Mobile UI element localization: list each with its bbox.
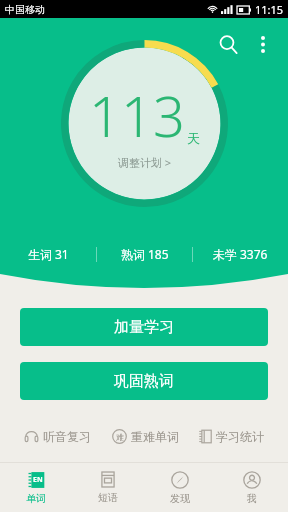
staticText: 我: [247, 492, 257, 505]
button[interactable]: 难: [108, 425, 183, 448]
staticText: 加量学习: [114, 318, 174, 337]
staticText: 中国移动: [5, 3, 45, 16]
button[interactable]: 113: [61, 40, 228, 207]
staticText: 重难单词: [131, 429, 179, 444]
button[interactable]: More options: [246, 27, 280, 61]
staticText: 天: [187, 130, 200, 146]
staticText: 113: [89, 77, 185, 153]
staticText: 未学: [213, 247, 237, 262]
button[interactable]: 熟词: [97, 246, 192, 262]
staticText: 学习统计: [216, 429, 264, 444]
button[interactable]: Search: [210, 26, 246, 62]
button[interactable]: EN: [0, 463, 72, 512]
staticText: 发现: [170, 492, 190, 505]
staticText: 难: [116, 432, 124, 442]
staticText: EN: [33, 475, 43, 485]
staticText: 3376: [240, 246, 268, 262]
button[interactable]: 加量学习: [20, 308, 268, 346]
button[interactable]: 巩固熟词: [20, 362, 268, 400]
button[interactable]: 短语: [72, 463, 144, 512]
staticText: 熟词: [121, 247, 145, 262]
button[interactable]: 调整计划 >: [118, 155, 172, 170]
staticText: 185: [148, 246, 169, 262]
staticText: 生词: [28, 247, 52, 262]
staticText: 调整计划 >: [118, 155, 172, 170]
staticText: 单词: [26, 492, 46, 505]
staticText: 听音复习: [43, 429, 91, 444]
button[interactable]: 发现: [144, 463, 216, 512]
staticText: 11:15: [255, 2, 284, 17]
button[interactable]: 听音复习: [20, 425, 95, 448]
staticText: 巩固熟词: [114, 372, 174, 391]
staticText: 短语: [98, 491, 118, 504]
staticText: 31: [55, 246, 69, 262]
button[interactable]: 未学: [193, 246, 288, 262]
button[interactable]: 我: [216, 463, 288, 512]
button[interactable]: 学习统计: [195, 425, 268, 448]
button[interactable]: 生词: [0, 246, 96, 262]
